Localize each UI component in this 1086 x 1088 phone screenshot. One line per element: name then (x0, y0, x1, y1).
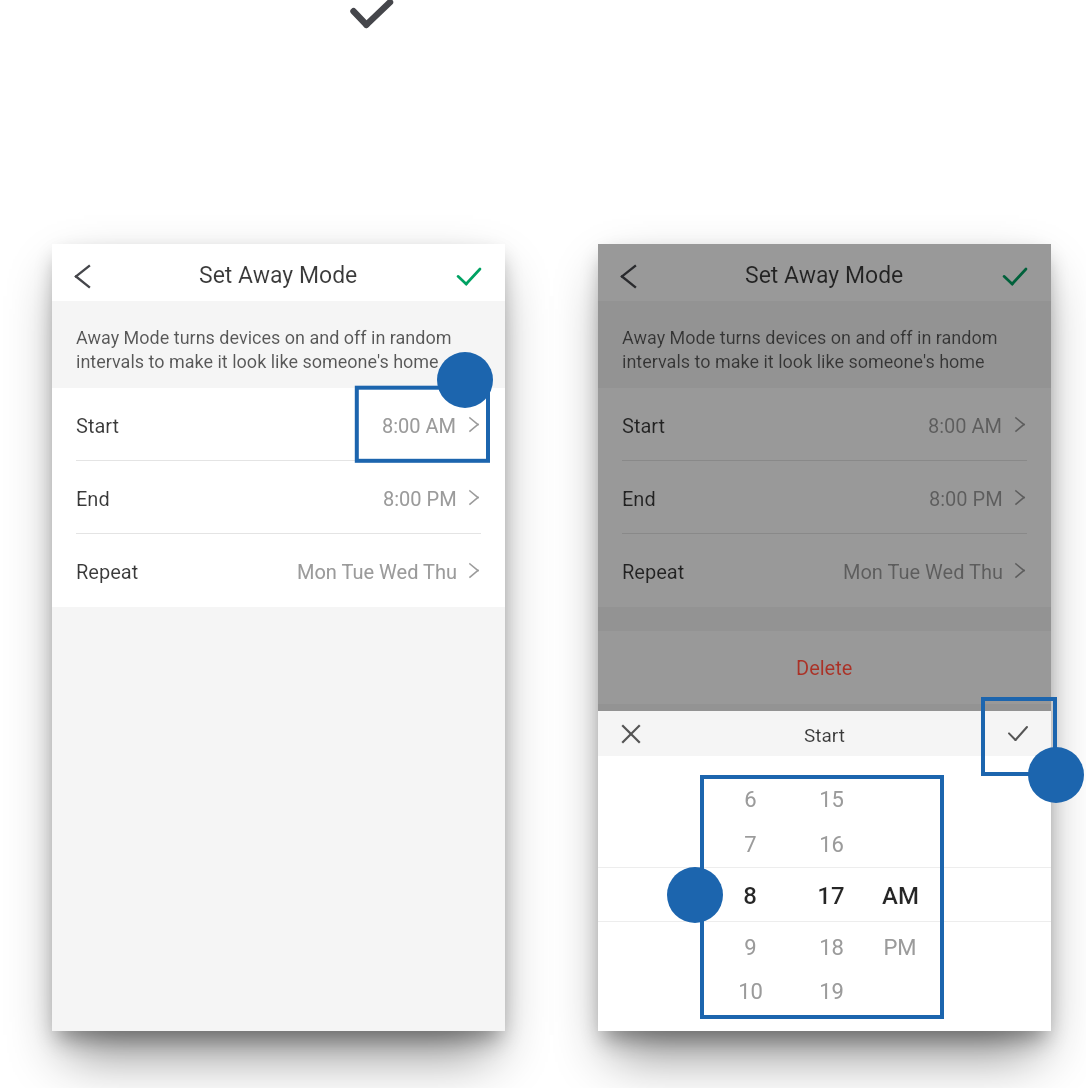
staticText: Mon Tue Wed Thu (843, 560, 1003, 583)
button[interactable]: 6 (710, 777, 790, 822)
button[interactable]: Start (52, 388, 505, 461)
button[interactable]: Confirm (991, 252, 1039, 300)
staticText: Away Mode turns devices on and off in ra… (622, 327, 998, 372)
staticText: 8:00 PM (383, 487, 457, 510)
staticText: 10 (738, 979, 763, 1005)
staticText: 19 (819, 979, 844, 1005)
button[interactable]: 18 (791, 925, 871, 970)
button[interactable]: 17 (791, 870, 871, 922)
button[interactable]: AM (860, 870, 940, 922)
button[interactable]: 8 (710, 870, 790, 922)
button[interactable]: Cancel (607, 711, 655, 756)
button[interactable]: Back (58, 252, 107, 300)
button[interactable] (860, 777, 940, 822)
staticText: PM (883, 935, 917, 961)
button[interactable]: End (52, 461, 505, 534)
staticText: AM (882, 882, 919, 910)
staticText: 6 (744, 787, 757, 813)
staticText: 8:00 PM (929, 487, 1003, 510)
staticText: End (76, 487, 110, 510)
button[interactable]: PM (860, 925, 940, 970)
staticText: 16 (819, 832, 844, 858)
button[interactable]: Start (598, 388, 1051, 461)
staticText: Start (76, 414, 120, 437)
staticText: 9 (744, 935, 757, 961)
button[interactable]: End (598, 461, 1051, 534)
staticText: 7 (744, 832, 757, 858)
staticText: 8:00 AM (382, 414, 457, 437)
staticText: Start (804, 724, 845, 746)
staticText: Set Away Mode (745, 262, 904, 289)
staticText: 18 (819, 935, 844, 961)
staticText: Delete (796, 656, 853, 679)
staticText: Set Away Mode (199, 262, 358, 289)
button[interactable]: Back (604, 252, 653, 300)
staticText: 8:00 AM (928, 414, 1003, 437)
staticText: 17 (817, 882, 845, 910)
staticText: Away Mode turns devices on and off in ra… (76, 327, 452, 372)
staticText: Mon Tue Wed Thu (297, 560, 457, 583)
button[interactable]: Repeat (52, 534, 505, 607)
button[interactable]: Done (994, 711, 1042, 756)
button[interactable]: Delete (598, 631, 1051, 704)
staticText: End (622, 487, 656, 510)
button[interactable]: 10 (710, 969, 790, 1014)
button[interactable]: 7 (710, 822, 790, 867)
button[interactable]: Repeat (598, 534, 1051, 607)
staticText: 15 (819, 787, 844, 813)
button[interactable]: Confirm (445, 252, 493, 300)
staticText: Start (622, 414, 666, 437)
staticText: Repeat (622, 560, 685, 583)
staticText: Repeat (76, 560, 139, 583)
staticText: 8 (743, 882, 757, 910)
button[interactable]: 9 (710, 925, 790, 970)
button[interactable]: 16 (791, 822, 871, 867)
button[interactable]: 19 (791, 969, 871, 1014)
button[interactable]: 15 (791, 777, 871, 822)
